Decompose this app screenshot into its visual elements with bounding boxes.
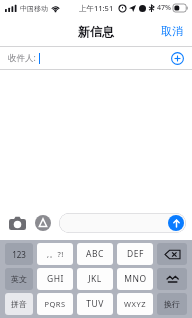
staticText: 收件人:: [8, 52, 36, 64]
staticText: ABC: [86, 248, 104, 260]
button[interactable]: Camera: [6, 212, 28, 234]
staticText: 新信息: [78, 24, 114, 39]
button[interactable]: 拼音: [5, 293, 33, 315]
button[interactable]: Shift: [157, 268, 187, 290]
staticText: DEF: [127, 248, 144, 260]
button[interactable]: Delete: [157, 243, 187, 265]
button[interactable]: 英文: [5, 268, 33, 290]
staticText: 拼音: [11, 299, 27, 309]
staticText: MNO: [124, 273, 147, 285]
staticText: 123: [12, 249, 26, 260]
button[interactable]: ABC: [77, 243, 113, 265]
button[interactable]: App Store: [32, 212, 54, 234]
staticText: 47%: [157, 3, 171, 13]
button[interactable]: JKL: [77, 268, 113, 290]
staticText: PQRS: [44, 299, 66, 309]
staticText: WXYZ: [124, 299, 146, 309]
button[interactable]: 换行: [157, 293, 187, 315]
staticText: GHI: [47, 273, 64, 285]
button[interactable]: MNO: [117, 268, 153, 290]
button[interactable]: ,。?!: [37, 243, 73, 265]
staticText: 上午11:51: [79, 3, 114, 13]
button[interactable]: WXYZ: [117, 293, 153, 315]
staticText: ,。?!: [47, 249, 64, 259]
staticText: 换行: [164, 299, 180, 309]
button[interactable]: TUV: [77, 293, 113, 315]
button[interactable]: PQRS: [37, 293, 73, 315]
button[interactable]: Send: [59, 213, 186, 233]
button[interactable]: Add contact: [168, 49, 186, 67]
button[interactable]: GHI: [37, 268, 73, 290]
staticText: TUV: [86, 298, 104, 310]
staticText: 取消: [161, 24, 183, 38]
button[interactable]: 123: [5, 243, 33, 265]
staticText: JKL: [88, 273, 102, 285]
button[interactable]: 取消: [152, 18, 192, 44]
other: Send: [168, 215, 184, 231]
button[interactable]: DEF: [117, 243, 153, 265]
staticText: 英文: [11, 274, 27, 284]
staticText: 中国移动: [20, 4, 48, 13]
